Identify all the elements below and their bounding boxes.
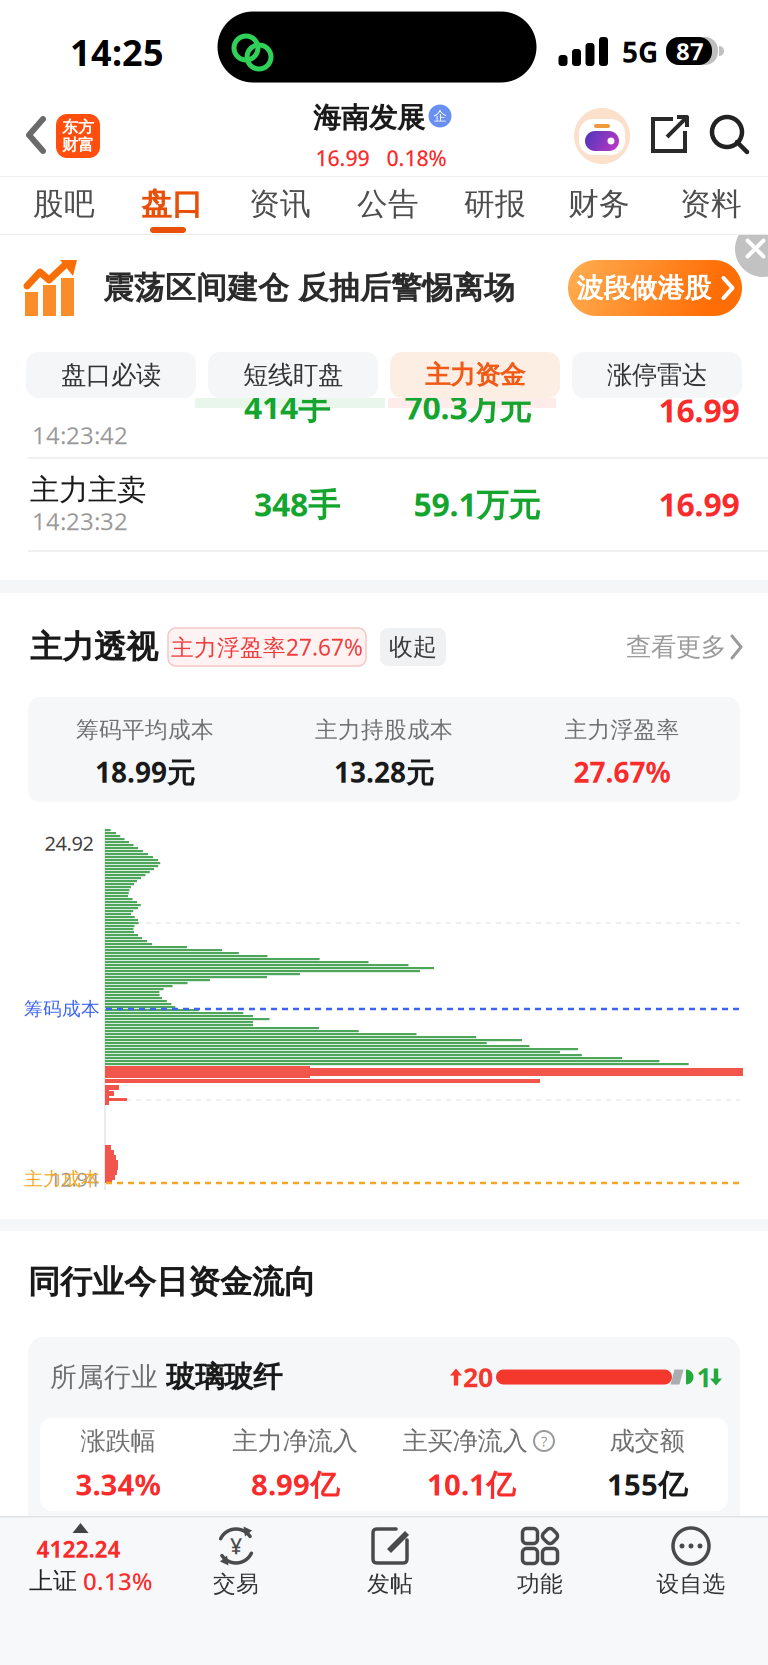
button[interactable]: 盘口: [0, 176, 768, 235]
staticText: 414手: [244, 386, 330, 428]
button[interactable]: 资料: [0, 176, 768, 235]
staticText: 24.92: [44, 830, 93, 856]
button[interactable]: 财务: [0, 176, 768, 235]
staticText: 16.99: [658, 483, 739, 525]
button[interactable]: 东方财富: [0, 90, 768, 176]
staticText: 财富: [62, 135, 94, 155]
staticText: 12.94: [49, 1166, 98, 1192]
staticText: 14:25: [70, 28, 164, 76]
staticText: 同行业今日资金流向: [28, 1262, 316, 1302]
staticText: 公告: [357, 185, 419, 223]
button[interactable]: Close banner: [0, 235, 768, 330]
button[interactable]: 股吧: [0, 176, 768, 235]
staticText: 70.3万元: [404, 386, 531, 428]
staticText: 涨停雷达: [607, 359, 707, 390]
staticText: 4122.24: [36, 1534, 120, 1564]
staticText: 财务: [568, 185, 630, 223]
staticText: 企: [433, 108, 446, 124]
button[interactable]: Share: [0, 90, 768, 176]
staticText: 发帖: [367, 1570, 413, 1598]
button[interactable]: 设自选: [615, 1516, 767, 1616]
staticText: 盘口必读: [61, 359, 161, 390]
staticText: 3.34%: [75, 1464, 160, 1503]
staticText: 27.67%: [573, 753, 670, 791]
staticText: 东方: [62, 117, 94, 137]
staticText: 16.99: [315, 144, 369, 172]
button[interactable]: 资讯: [0, 176, 768, 235]
staticText: 5G: [622, 33, 658, 71]
staticText: 资讯: [249, 185, 311, 223]
staticText: 87: [676, 35, 704, 67]
staticText: 成交额: [609, 1425, 684, 1456]
button[interactable]: 盘口必读: [0, 330, 768, 398]
staticText: 筹码成本: [24, 997, 100, 1020]
button[interactable]: AI assistant: [0, 90, 768, 176]
staticText: 13.28元: [334, 753, 434, 791]
staticText: 涨跌幅: [80, 1425, 155, 1456]
staticText: 主力持股成本: [315, 716, 453, 744]
staticText: 14:23:32: [32, 505, 128, 537]
staticText: 主力透视: [30, 627, 158, 667]
staticText: 玻璃玻纤: [166, 1359, 282, 1395]
staticText: 1: [696, 1359, 711, 1395]
button[interactable]: 波段做港股: [0, 235, 768, 330]
button[interactable]: 发帖: [314, 1516, 466, 1616]
button[interactable]: 收起: [0, 593, 768, 1219]
staticText: 0.18%: [386, 144, 446, 172]
button[interactable]: 主力资金: [0, 330, 768, 398]
staticText: 10.1亿: [427, 1464, 515, 1503]
staticText: 研报: [464, 185, 526, 223]
button[interactable]: 涨停雷达: [0, 330, 768, 398]
staticText: ?: [541, 1431, 547, 1451]
staticText: 主力浮盈率27.67%: [171, 632, 363, 662]
staticText: 16.99: [658, 389, 739, 431]
staticText: 资料: [680, 185, 742, 223]
staticText: 上证: [29, 1566, 77, 1596]
staticText: 主力净流入: [232, 1425, 357, 1456]
staticText: 主力成本: [24, 1167, 100, 1190]
staticText: 主力浮盈率: [564, 716, 679, 744]
button[interactable]: 公告: [0, 176, 768, 235]
staticText: 波段做港股: [576, 272, 711, 304]
staticText: 主力主卖: [30, 472, 146, 508]
staticText: 所属行业: [50, 1361, 158, 1393]
staticText: 348手: [254, 483, 340, 525]
button[interactable]: 查看更多: [0, 593, 768, 1219]
staticText: 海南发展: [313, 101, 425, 135]
staticText: 155亿: [607, 1464, 687, 1503]
staticText: 交易: [213, 1570, 259, 1598]
button[interactable]: Search: [0, 90, 768, 176]
staticText: 20: [463, 1359, 493, 1395]
staticText: 震荡区间建仓 反抽后警惕离场: [103, 269, 515, 307]
staticText: 主力资金: [425, 359, 525, 390]
staticText: 筹码平均成本: [76, 716, 214, 744]
staticText: 8.99亿: [251, 1464, 339, 1503]
staticText: 0.13%: [83, 1565, 152, 1597]
staticText: 股吧: [33, 185, 95, 223]
staticText: 盘口: [141, 185, 203, 223]
staticText: 短线盯盘: [243, 359, 343, 390]
staticText: 14:23:42: [32, 419, 128, 451]
staticText: 主买净流入: [402, 1425, 527, 1456]
staticText: 收起: [389, 632, 437, 662]
button[interactable]: 功能: [464, 1516, 616, 1616]
button[interactable]: Back: [0, 90, 768, 176]
button[interactable]: 4122.24: [0, 1516, 153, 1616]
staticText: 功能: [517, 1570, 563, 1598]
staticText: ¥: [230, 1532, 242, 1560]
staticText: 59.1万元: [413, 483, 540, 525]
button[interactable]: 短线盯盘: [0, 330, 768, 398]
staticText: 查看更多: [626, 631, 726, 662]
button[interactable]: ¥: [160, 1516, 312, 1616]
button[interactable]: 研报: [0, 176, 768, 235]
staticText: 18.99元: [95, 753, 195, 791]
staticText: 设自选: [656, 1570, 725, 1598]
